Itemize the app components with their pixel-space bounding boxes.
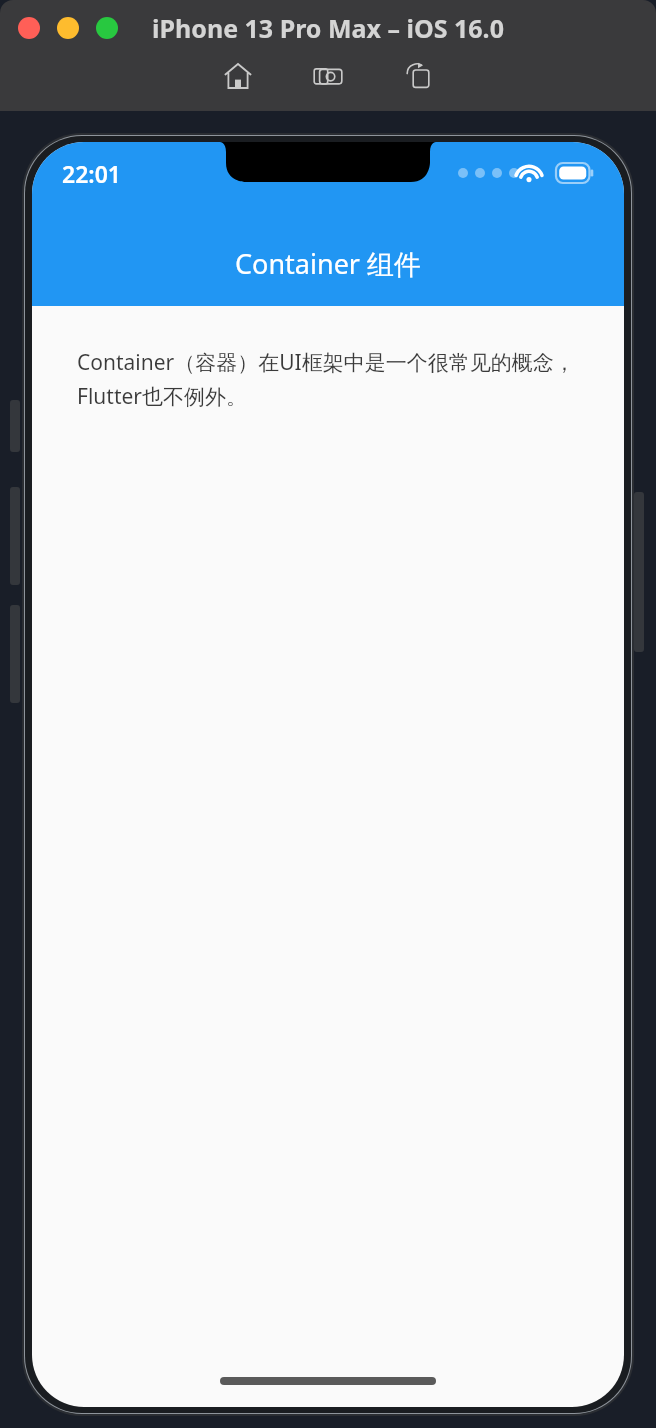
staticText: iPhone 13 Pro Max – iOS 16.0 [152, 11, 504, 45]
staticText: 22:01 [62, 158, 121, 189]
button[interactable]: Close [18, 17, 40, 39]
button[interactable]: Rotate [395, 53, 441, 99]
button[interactable]: Zoom [96, 17, 118, 39]
button[interactable]: Screenshot [305, 53, 351, 99]
button[interactable]: Home [215, 53, 261, 99]
button[interactable]: Minimize [57, 17, 79, 39]
staticText: Container 组件 [235, 245, 422, 282]
staticText: Container（容器）在UI框架中是一个很常见的概念，Flutter也不例外… [77, 348, 584, 410]
